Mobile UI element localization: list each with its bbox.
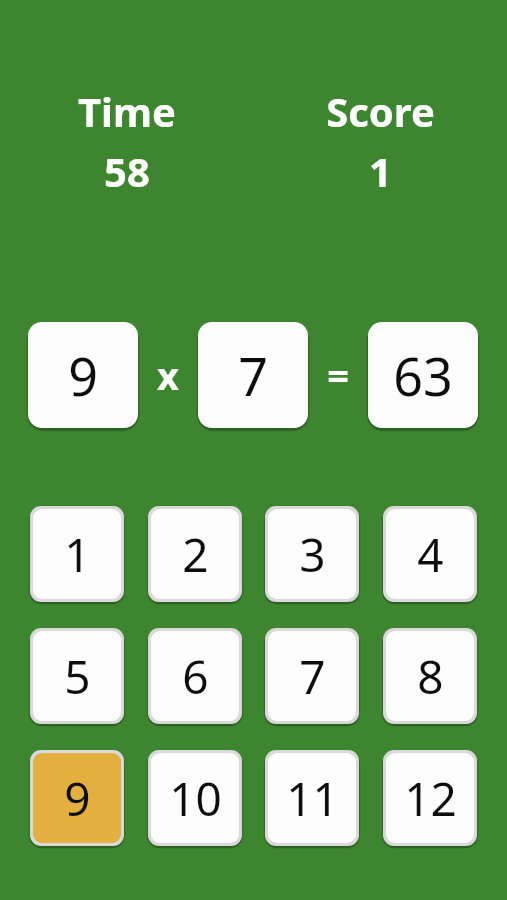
staticText: 3 [299,523,326,586]
staticText: Time [78,84,176,138]
staticText: 11 [286,767,339,830]
staticText: 58 [104,144,150,198]
button[interactable]: 8 [386,631,474,721]
staticText: 9 [64,767,91,830]
staticText: 7 [238,340,268,411]
button[interactable]: 63 [368,322,478,428]
button[interactable]: 11 [268,753,356,843]
button[interactable]: 6 [151,631,239,721]
button[interactable]: 9 [28,322,138,428]
staticText: 63 [393,340,453,411]
button[interactable]: Score [253,84,507,198]
staticText: 12 [404,767,457,830]
staticText: 1 [64,523,91,586]
staticText: x [157,349,179,401]
staticText: 2 [182,523,209,586]
staticText: 8 [417,645,444,708]
button[interactable]: 7 [268,631,356,721]
staticText: 4 [417,523,444,586]
staticText: 7 [299,645,326,708]
button[interactable]: 1 [33,509,121,599]
button[interactable]: 10 [151,753,239,843]
staticText: 9 [68,340,98,411]
staticText: Score [326,84,435,138]
button[interactable]: 4 [386,509,474,599]
button[interactable]: 2 [151,509,239,599]
button[interactable]: 9 [33,753,121,843]
staticText: 10 [169,767,222,830]
button[interactable]: Time [0,84,253,198]
button[interactable]: 7 [198,322,308,428]
staticText: = [327,349,349,401]
staticText: 6 [182,645,209,708]
button[interactable]: 12 [386,753,474,843]
staticText: 5 [64,645,91,708]
button[interactable]: 5 [33,631,121,721]
button[interactable]: 3 [268,509,356,599]
staticText: 1 [369,144,392,198]
